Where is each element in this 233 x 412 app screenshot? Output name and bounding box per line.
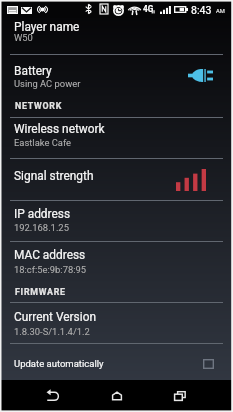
button[interactable]: Wireless network — [0, 117, 233, 159]
staticText: Using AC power — [14, 78, 81, 89]
staticText: Battery — [14, 64, 52, 78]
button[interactable]: Player name — [0, 18, 233, 55]
staticText: W50 — [14, 32, 33, 43]
button[interactable]: Update automatically — [0, 343, 233, 379]
button[interactable]: Current Version — [0, 302, 233, 344]
staticText: Signal strength — [14, 169, 94, 183]
button[interactable]: MAC address — [0, 241, 233, 301]
staticText: 8:43 — [191, 4, 212, 16]
button[interactable]: Battery — [0, 54, 233, 117]
staticText: 18:cf:5e:9b:78:95 — [14, 264, 87, 275]
staticText: Update automatically — [14, 358, 104, 369]
staticText: 1.8.30-S/1.1.4/1.2 — [14, 326, 90, 337]
button[interactable]: Signal strength — [0, 158, 233, 200]
staticText: IP address — [14, 207, 71, 221]
button[interactable]: Back — [36, 380, 70, 412]
staticText: Wireless network — [14, 122, 105, 136]
staticText: Player name — [14, 20, 80, 34]
staticText: MAC address — [14, 248, 86, 262]
staticText: Eastlake Cafe — [14, 137, 72, 148]
staticText: 4G — [143, 4, 154, 13]
staticText: Current Version — [14, 310, 96, 324]
staticText: NETWORK — [15, 101, 62, 111]
staticText: FIRMWARE — [15, 287, 66, 297]
button[interactable]: IP address — [0, 200, 233, 241]
staticText: 192.168.1.25 — [14, 222, 69, 233]
button[interactable]: Home — [100, 380, 133, 412]
staticText: AM — [216, 8, 225, 15]
button[interactable]: Recents — [163, 380, 196, 412]
